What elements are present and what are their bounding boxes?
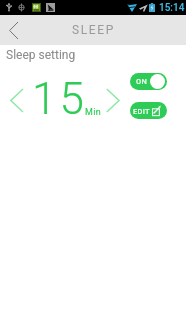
- staticText: 15:14: [159, 2, 185, 14]
- staticText: EDIT: [133, 107, 150, 116]
- button[interactable]: Back: [0, 15, 28, 45]
- button[interactable]: Decrease: [2, 82, 30, 120]
- staticText: Sleep setting: [6, 48, 76, 62]
- button[interactable]: EDIT: [130, 102, 167, 119]
- staticText: Min: [85, 107, 101, 118]
- button[interactable]: ON: [130, 73, 167, 90]
- staticText: ON: [136, 77, 148, 86]
- staticText: 15: [32, 73, 87, 125]
- button[interactable]: Increase: [98, 82, 126, 120]
- staticText: SLEEP: [72, 23, 115, 37]
